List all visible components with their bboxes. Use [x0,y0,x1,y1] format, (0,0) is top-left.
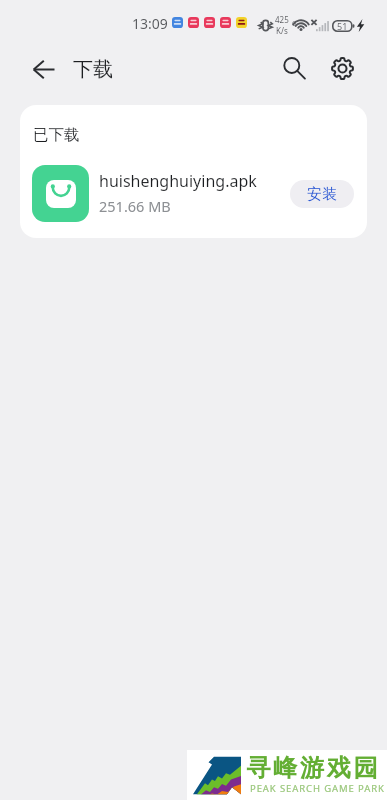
staticText: 寻峰游戏园 [245,753,379,783]
staticText: 51 [337,20,348,32]
staticText: 安装 [307,185,337,204]
staticText: huishenghuiying.apk [99,170,257,192]
staticText: K/s [276,25,288,36]
button[interactable]: Back [22,47,66,91]
staticText: 已下载 [33,125,80,145]
button[interactable]: 安装 [290,180,354,208]
staticText: 下载 [73,57,113,82]
staticText: 425 [275,14,289,25]
button[interactable]: Settings [321,47,363,89]
button[interactable]: huishenghuiying.apk [20,162,367,224]
staticText: 251.66 MB [99,196,171,216]
staticText: 13:09 [132,14,168,33]
button[interactable]: Search [273,47,315,89]
staticText: PEAK SEARCH GAME PARK [250,782,385,795]
staticText: 6 [292,19,297,29]
